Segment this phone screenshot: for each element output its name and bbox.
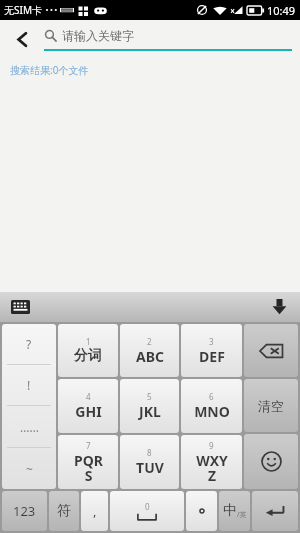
staticText: /英 [237, 510, 247, 520]
button[interactable]: ? [2, 324, 56, 489]
button[interactable]: Backspace [244, 324, 298, 377]
button[interactable]: Emoji [244, 434, 298, 489]
button[interactable]: , [81, 491, 108, 531]
staticText: 123 [13, 502, 36, 520]
staticText: 1 [86, 336, 91, 347]
staticText: 3 [209, 336, 214, 347]
button[interactable]: 2 [120, 324, 179, 377]
staticText: ! [27, 377, 31, 393]
staticText: 5 [147, 391, 152, 402]
staticText: 8 [147, 447, 152, 458]
staticText: 6 [209, 391, 214, 402]
button[interactable] [186, 491, 217, 531]
staticText: WXY Z [196, 451, 228, 485]
button[interactable]: 中 [219, 491, 250, 531]
staticText: ABC [136, 347, 164, 366]
staticText: 清空 [258, 398, 284, 414]
button[interactable]: 1 [58, 324, 118, 377]
staticText: …… [20, 419, 39, 435]
staticText: 分词 [74, 347, 102, 365]
staticText: 2 [147, 336, 152, 347]
button[interactable]: 4 [58, 379, 118, 433]
button[interactable]: Keyboard settings [6, 293, 34, 321]
button[interactable]: 6 [181, 379, 242, 433]
button[interactable]: 5 [120, 379, 179, 433]
button[interactable]: Back [0, 20, 44, 58]
staticText: PQR S [74, 451, 103, 485]
button[interactable]: Hide keyboard [266, 294, 292, 320]
button[interactable]: 9 [181, 435, 242, 489]
button[interactable]: Enter [252, 491, 298, 531]
staticText: TUV [136, 458, 164, 477]
staticText: 中 [223, 502, 237, 520]
button[interactable]: 123 [2, 491, 47, 531]
staticText: 请输入关键字 [62, 28, 134, 43]
staticText: 10:49 [267, 3, 296, 18]
button[interactable]: 7 [58, 435, 118, 489]
staticText: 7 [86, 440, 91, 451]
button[interactable]: 8 [120, 435, 179, 489]
staticText: MNO [194, 402, 230, 421]
staticText: DEF [199, 347, 225, 366]
staticText: , [93, 502, 97, 520]
staticText: 9 [209, 440, 214, 451]
button[interactable]: 3 [181, 324, 242, 377]
staticText: 无SIM卡 [4, 3, 42, 17]
staticText: 搜索结果:0个文件 [10, 63, 89, 77]
button[interactable]: 0 [110, 491, 184, 531]
staticText: GHI [75, 402, 102, 421]
button[interactable]: Clear [244, 379, 298, 432]
staticText: JKL [139, 402, 161, 421]
staticText: 0 [145, 501, 150, 512]
staticText: 4 [86, 391, 91, 402]
button[interactable]: 请输入关键字 [44, 20, 292, 58]
button[interactable]: 符 [49, 491, 79, 531]
staticText: ? [26, 336, 32, 352]
staticText: ~ [26, 461, 33, 477]
staticText: 符 [57, 502, 71, 520]
